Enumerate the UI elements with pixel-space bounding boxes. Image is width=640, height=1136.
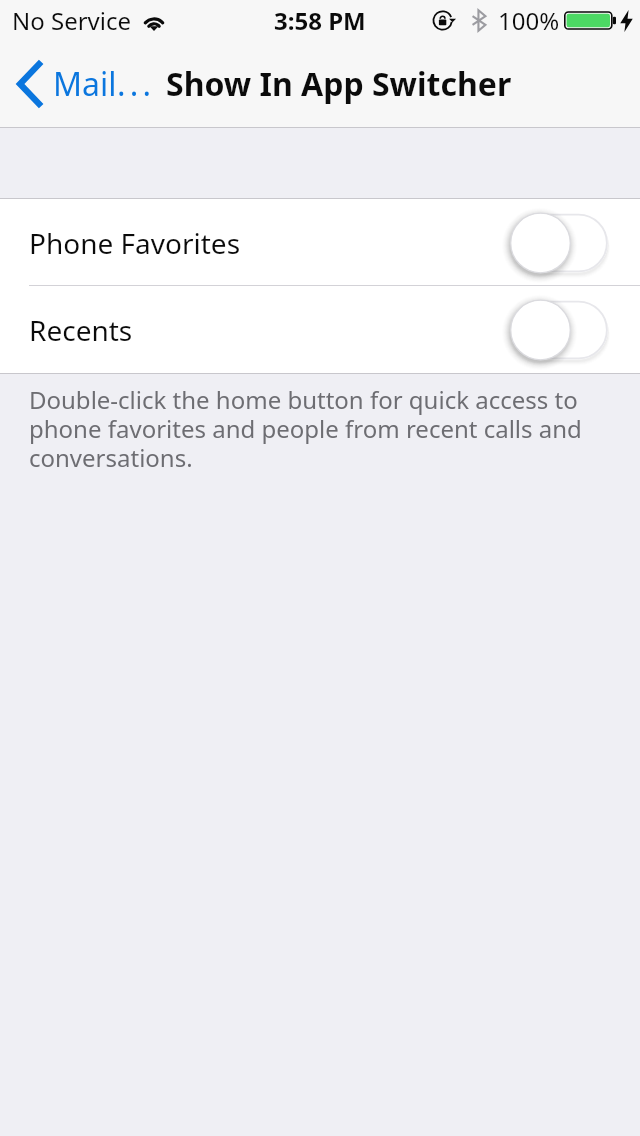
staticText: ... xyxy=(117,62,156,106)
staticText: No Service xyxy=(12,4,132,37)
staticText: Mail xyxy=(53,62,117,106)
button[interactable]: Phone Favorites toggle, off xyxy=(511,207,616,279)
button[interactable]: Recents xyxy=(0,286,640,373)
staticText: Double-click the home button for quick a… xyxy=(29,383,605,474)
staticText: 100% xyxy=(498,4,560,37)
staticText: 3:58 PM xyxy=(274,4,366,37)
staticText: Recents xyxy=(29,311,133,349)
button[interactable]: Phone Favorites xyxy=(0,199,640,286)
button[interactable]: Back to Mail settings xyxy=(0,52,166,116)
button[interactable]: Recents toggle, off xyxy=(511,294,616,366)
staticText: Show In App Switcher xyxy=(166,62,512,106)
staticText: Phone Favorites xyxy=(29,224,241,262)
